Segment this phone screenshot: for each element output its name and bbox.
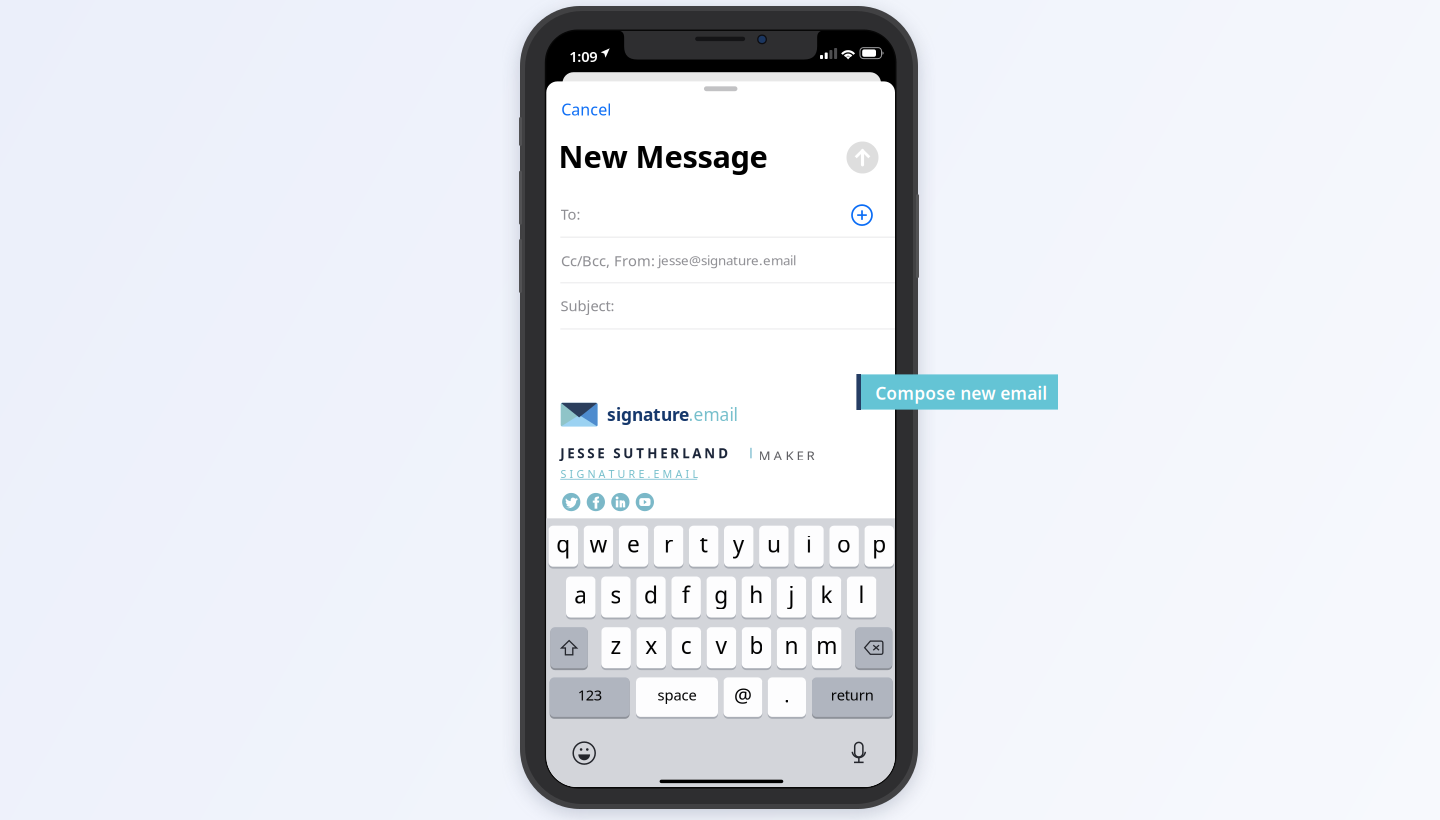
staticText: l (859, 579, 865, 610)
button[interactable]: LinkedIn (611, 493, 629, 511)
button[interactable]: q (548, 526, 578, 569)
staticText: z (611, 630, 622, 660)
button[interactable]: Send (846, 141, 878, 173)
staticText: J E S S E S U T H E R L A N D (560, 444, 728, 462)
button[interactable]: Twitter (562, 493, 580, 511)
button[interactable]: y (724, 526, 754, 569)
button[interactable]: Add recipient (851, 204, 873, 226)
staticText: g (714, 579, 728, 610)
button[interactable]: Shift (550, 627, 588, 670)
button[interactable]: c (671, 627, 701, 670)
button[interactable]: space (636, 677, 718, 719)
staticText: Compose new email (875, 382, 1047, 405)
staticText: return (831, 685, 874, 704)
button[interactable]: . (768, 677, 806, 719)
staticText: a (574, 579, 587, 610)
staticText: u (767, 529, 781, 559)
button[interactable]: 123 (550, 677, 630, 719)
button[interactable]: p (864, 526, 894, 569)
button[interactable]: z (601, 627, 631, 670)
button[interactable]: i (794, 526, 824, 569)
staticText: s (610, 579, 621, 610)
staticText: M A K E R (759, 446, 815, 464)
button[interactable]: b (742, 627, 771, 670)
staticText: t (700, 529, 708, 559)
staticText: j (788, 579, 794, 610)
button[interactable]: d (636, 576, 666, 619)
button[interactable]: e (619, 526, 648, 569)
staticText: c (681, 630, 692, 660)
button[interactable]: n (777, 627, 806, 670)
staticText: q (556, 529, 570, 559)
button[interactable]: Facebook (587, 493, 605, 511)
staticText: x (645, 630, 657, 660)
staticText: v (715, 630, 727, 660)
staticText: . (784, 681, 789, 708)
staticText: signature (607, 403, 689, 426)
staticText: n (785, 630, 799, 660)
button[interactable]: f (671, 576, 701, 619)
button[interactable]: Delete (855, 627, 892, 670)
button[interactable]: v (707, 627, 736, 670)
staticText: p (872, 529, 886, 559)
staticText: jesse@signature.email (658, 251, 796, 269)
staticText: To: (560, 204, 580, 224)
staticText: space (657, 685, 696, 704)
button[interactable]: w (584, 526, 613, 569)
staticText: d (644, 579, 658, 610)
staticText: y (733, 529, 745, 559)
staticText: r (664, 529, 673, 559)
button[interactable]: s (601, 576, 631, 619)
staticText: w (589, 529, 607, 559)
button[interactable]: u (759, 526, 789, 569)
button[interactable]: o (829, 526, 859, 569)
button[interactable]: m (812, 627, 841, 670)
staticText: m (816, 630, 837, 660)
staticText: 123 (578, 685, 602, 704)
button[interactable]: l (847, 576, 876, 619)
staticText: Subject: (560, 296, 614, 315)
staticText: .email (689, 403, 738, 426)
button[interactable]: h (741, 576, 771, 619)
button[interactable]: r (654, 526, 683, 569)
staticText: New Message (559, 136, 768, 176)
staticText: Cancel (561, 99, 611, 120)
button[interactable]: k (812, 576, 841, 619)
staticText: f (682, 579, 690, 610)
button[interactable]: YouTube (636, 493, 654, 511)
button[interactable]: Emoji keyboard (573, 742, 596, 765)
staticText: h (749, 579, 763, 610)
button[interactable]: Cancel (561, 91, 619, 119)
button[interactable]: Compose new email (856, 374, 1058, 410)
button[interactable]: return (812, 677, 893, 719)
button[interactable]: Dictate (852, 742, 866, 765)
staticText: S I G N A T U R E . E M A I L (560, 467, 698, 481)
staticText: @ (734, 681, 752, 708)
staticText: 1:09 (569, 47, 597, 66)
staticText: e (627, 529, 640, 559)
staticText: i (806, 529, 812, 559)
staticText: o (837, 529, 851, 559)
staticText: b (749, 630, 763, 660)
button[interactable]: x (636, 627, 666, 670)
button[interactable]: a (566, 576, 596, 619)
button[interactable]: g (706, 576, 736, 619)
staticText: Cc/Bcc, From: (561, 251, 655, 270)
button[interactable]: @ (723, 677, 762, 719)
staticText: k (820, 579, 832, 610)
button[interactable]: t (689, 526, 718, 569)
button[interactable]: j (777, 576, 806, 619)
